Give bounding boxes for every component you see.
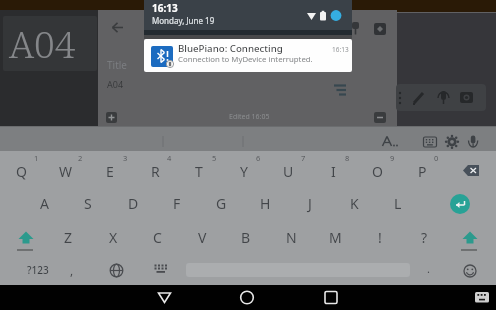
button[interactable]: Z	[54, 224, 82, 250]
button[interactable]: X	[99, 224, 127, 250]
button[interactable]: R	[141, 158, 169, 184]
staticText: Connection to MyDevice interrupted.	[178, 54, 313, 65]
staticText: P	[418, 162, 427, 181]
staticText: 6	[256, 153, 261, 163]
button[interactable]: Q	[7, 158, 35, 184]
staticText: Z	[64, 228, 73, 247]
staticText: 4	[167, 153, 172, 163]
staticText: W	[59, 162, 73, 181]
button[interactable]: BluePiano: Connecting	[144, 39, 352, 72]
staticText: 1	[34, 153, 39, 163]
staticText: J	[308, 194, 312, 213]
button[interactable]: A	[30, 190, 58, 216]
staticText: Q	[16, 162, 27, 181]
button[interactable]	[154, 264, 168, 275]
staticText: L	[394, 194, 402, 213]
button[interactable]: T	[185, 158, 213, 184]
button[interactable]: B	[232, 224, 260, 250]
staticText: T	[195, 162, 203, 181]
staticText: 2	[78, 153, 83, 163]
button[interactable]	[458, 160, 484, 182]
staticText: A04	[9, 18, 76, 68]
staticText: 7	[301, 153, 306, 163]
staticText: R	[151, 162, 160, 181]
button[interactable]: U	[274, 158, 302, 184]
button[interactable]	[463, 264, 477, 278]
staticText: Title	[107, 58, 127, 72]
staticText: ,	[70, 262, 74, 278]
button[interactable]	[106, 112, 117, 123]
button[interactable]: A04	[3, 16, 97, 71]
button[interactable]: G	[207, 190, 235, 216]
staticText: D	[128, 194, 139, 213]
button[interactable]: F	[163, 190, 191, 216]
button[interactable]: I	[319, 158, 347, 184]
button[interactable]	[450, 194, 470, 214]
staticText: C	[153, 228, 162, 247]
button[interactable]: .	[414, 255, 442, 281]
button[interactable]	[475, 292, 490, 303]
button[interactable]	[155, 288, 174, 306]
staticText: A	[40, 194, 49, 213]
button[interactable]: J	[296, 190, 324, 216]
button[interactable]: V	[188, 224, 216, 250]
button[interactable]: K	[340, 190, 368, 216]
button[interactable]	[322, 288, 340, 306]
staticText: S	[84, 194, 92, 213]
button[interactable]: P	[408, 158, 436, 184]
staticText: 3	[123, 153, 128, 163]
staticText: G	[216, 194, 227, 213]
staticText: U	[283, 162, 294, 181]
staticText: F	[173, 194, 181, 213]
staticText: 8	[345, 153, 350, 163]
staticText: M	[329, 228, 342, 247]
staticText: BluePiano: Connecting	[178, 42, 283, 55]
button[interactable]: ,	[58, 257, 86, 283]
staticText: X	[109, 228, 118, 247]
staticText: 16:13	[152, 1, 178, 15]
staticText: E	[106, 162, 114, 181]
button[interactable]: M	[321, 224, 349, 250]
staticText: I	[331, 162, 336, 181]
staticText: Edited 16:05	[229, 112, 270, 122]
button[interactable]: ?123	[27, 263, 49, 277]
staticText: 16:13	[332, 45, 349, 54]
button[interactable]	[458, 228, 482, 254]
button[interactable]	[238, 288, 256, 306]
staticText: V	[198, 228, 207, 247]
staticText: H	[260, 194, 271, 213]
staticText: !	[378, 228, 382, 247]
button[interactable]: E	[96, 158, 124, 184]
button[interactable]: O	[363, 158, 391, 184]
staticText: O	[372, 162, 383, 181]
button[interactable]: D	[119, 190, 147, 216]
staticText: 9	[390, 153, 395, 163]
button[interactable]: L	[384, 190, 412, 216]
staticText: K	[350, 194, 359, 213]
button[interactable]	[112, 22, 124, 33]
staticText: 5	[212, 153, 217, 163]
button[interactable]	[14, 228, 38, 254]
staticText: N	[286, 228, 297, 247]
staticText: ?	[421, 228, 428, 247]
button[interactable]: ?	[410, 224, 438, 250]
staticText: B	[241, 228, 251, 247]
button[interactable]: S	[74, 190, 102, 216]
button[interactable]: W	[52, 158, 80, 184]
staticText: Y	[240, 162, 248, 181]
button[interactable]: H	[251, 190, 279, 216]
button[interactable]: Y	[230, 158, 258, 184]
staticText: A04	[107, 78, 124, 90]
button[interactable]: N	[277, 224, 305, 250]
staticText: .	[427, 261, 430, 276]
button[interactable]	[374, 23, 386, 35]
staticText: Monday, June 19	[152, 15, 215, 26]
button[interactable]: C	[143, 224, 171, 250]
button[interactable]	[109, 263, 124, 278]
button[interactable]: !	[366, 224, 394, 250]
staticText: 0	[434, 153, 439, 163]
